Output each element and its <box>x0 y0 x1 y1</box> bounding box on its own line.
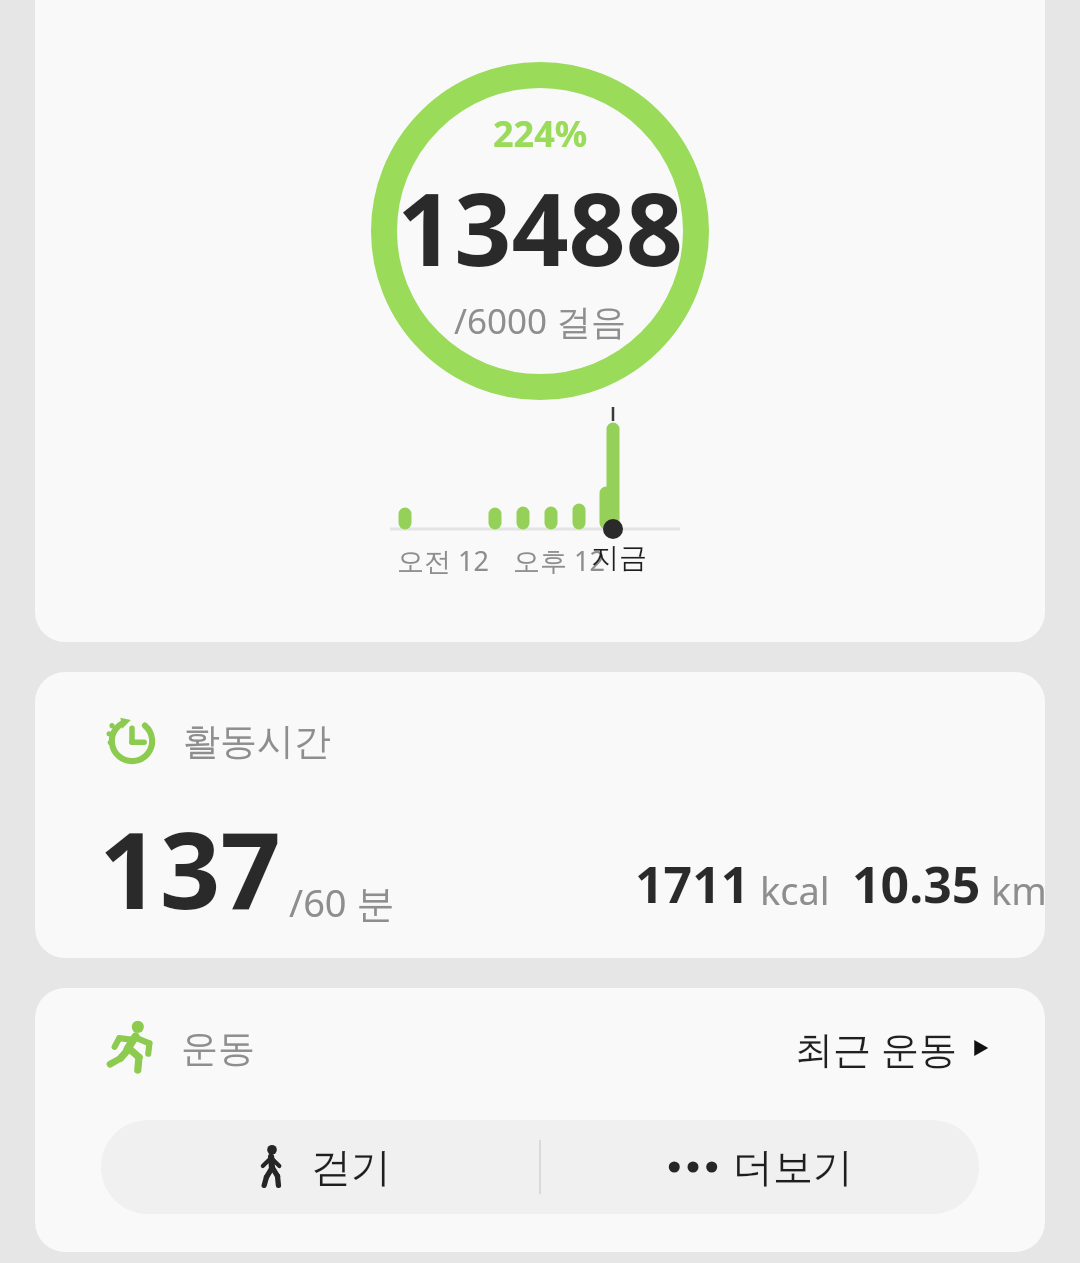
staticText: 더보기 <box>733 1142 853 1192</box>
staticText: 최근 운동 <box>795 1022 957 1074</box>
staticText: kcal <box>760 864 830 916</box>
staticText: 137 <box>99 796 281 940</box>
staticText: /60 분 <box>289 876 395 928</box>
staticText: 224% <box>493 109 588 158</box>
button[interactable]: 224% <box>35 0 1045 642</box>
button[interactable]: 활동시간 <box>35 672 1045 958</box>
staticText: /6000 걸음 <box>454 297 627 345</box>
staticText: 10.35 <box>852 850 981 918</box>
button[interactable]: 더보기 <box>541 1120 979 1214</box>
staticText: 1711 <box>635 850 750 918</box>
staticText: 지금 <box>591 540 647 575</box>
button[interactable]: 최근 운동 <box>789 1016 999 1080</box>
staticText: 13488 <box>397 159 683 295</box>
staticText: 운동 <box>181 1025 255 1072</box>
staticText: 활동시간 <box>183 718 331 765</box>
staticText: 걷기 <box>311 1142 391 1192</box>
button[interactable]: 걷기 <box>101 1120 539 1214</box>
staticText: 오전 12 <box>397 542 489 579</box>
staticText: km <box>991 864 1045 916</box>
staticText: 오후 12 <box>513 542 605 579</box>
